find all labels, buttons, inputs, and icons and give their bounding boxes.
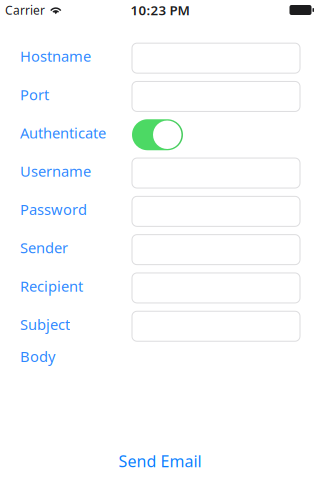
button[interactable]: Port [132, 81, 300, 111]
button[interactable]: Recipient [132, 273, 300, 303]
staticText: Body [20, 347, 55, 366]
button[interactable]: Password [132, 196, 300, 226]
staticText: Subject [20, 314, 70, 334]
staticText: Hostname [20, 46, 91, 66]
staticText: Port [20, 85, 49, 104]
staticText: Recipient [20, 276, 83, 296]
button[interactable]: Send Email [0, 446, 320, 476]
staticText: Username [20, 161, 91, 181]
staticText: Send Email [118, 450, 201, 472]
staticText: Sender [20, 238, 68, 257]
button[interactable]: Username [132, 158, 300, 188]
button[interactable]: Sender [132, 235, 300, 265]
button[interactable]: Hostname [132, 43, 300, 73]
button[interactable]: Authenticate [132, 119, 183, 150]
staticText: 10:23 PM [130, 1, 189, 19]
staticText: Carrier [5, 2, 45, 18]
button[interactable]: Subject [132, 311, 300, 341]
staticText: Password [20, 200, 87, 219]
staticText: Authenticate [20, 123, 106, 142]
